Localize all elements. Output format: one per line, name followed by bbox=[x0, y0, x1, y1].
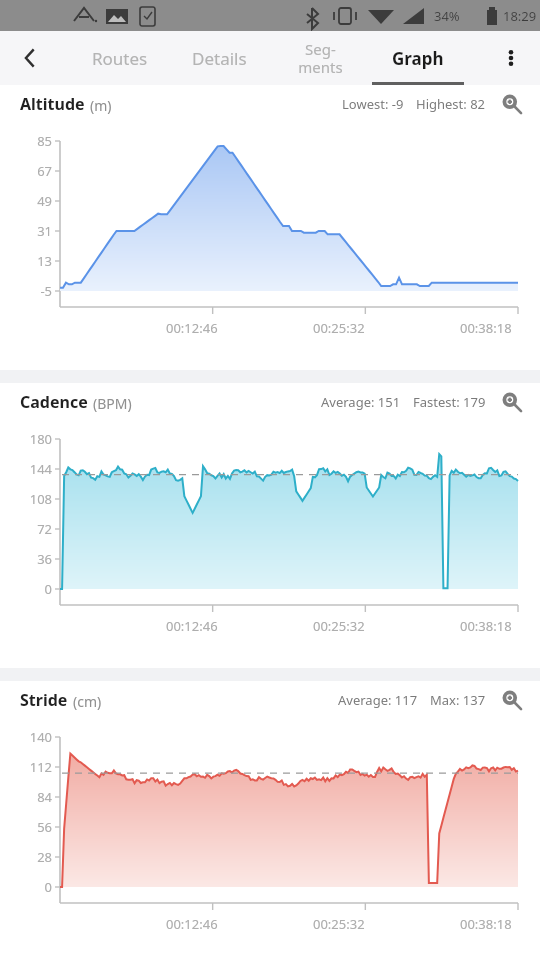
staticText: 13 bbox=[0, 252, 52, 270]
staticText: 180 bbox=[0, 430, 52, 448]
staticText: 67 bbox=[0, 162, 52, 180]
staticText: 00:38:18 bbox=[460, 617, 512, 635]
staticText: 140 bbox=[0, 728, 52, 746]
staticText: Graph bbox=[392, 47, 444, 70]
staticText: Lowest: -9 bbox=[342, 95, 404, 113]
staticText: -5 bbox=[0, 282, 52, 300]
staticText: Cadence bbox=[20, 391, 88, 413]
staticText: 56 bbox=[0, 818, 52, 836]
staticText: 108 bbox=[0, 490, 52, 508]
button[interactable]: Seg- ments bbox=[274, 31, 366, 85]
staticText: 00:38:18 bbox=[460, 319, 512, 337]
staticText: Average: 117 bbox=[338, 691, 418, 709]
staticText: 0 bbox=[0, 580, 52, 598]
staticText: 28 bbox=[0, 848, 52, 866]
button[interactable]: Back bbox=[0, 31, 60, 85]
staticText: 72 bbox=[0, 520, 52, 538]
staticText: (cm) bbox=[73, 692, 102, 711]
staticText: 00:25:32 bbox=[313, 319, 365, 337]
button[interactable]: Zoom in bbox=[496, 88, 528, 120]
staticText: 00:12:46 bbox=[166, 915, 218, 933]
staticText: 112 bbox=[0, 758, 52, 776]
button[interactable]: Zoom in bbox=[496, 386, 528, 418]
button[interactable]: Details bbox=[172, 31, 266, 85]
staticText: Details bbox=[192, 47, 247, 70]
staticText: Altitude bbox=[20, 93, 85, 115]
staticText: 00:38:18 bbox=[460, 915, 512, 933]
staticText: Stride bbox=[20, 689, 68, 711]
staticText: 00:25:32 bbox=[313, 617, 365, 635]
staticText: 36 bbox=[0, 550, 52, 568]
staticText: Average: 151 bbox=[321, 393, 401, 411]
button[interactable]: Graph bbox=[372, 31, 464, 85]
staticText: 84 bbox=[0, 788, 52, 806]
button[interactable]: Zoom in bbox=[496, 684, 528, 716]
staticText: Highest: 82 bbox=[416, 95, 486, 113]
staticText: 49 bbox=[0, 192, 52, 210]
staticText: Seg- ments bbox=[298, 39, 343, 78]
staticText: (m) bbox=[90, 96, 112, 115]
staticText: Routes bbox=[92, 47, 148, 70]
staticText: 18:29 bbox=[503, 7, 537, 25]
staticText: 00:12:46 bbox=[166, 617, 218, 635]
staticText: 34% bbox=[434, 7, 460, 25]
staticText: Fastest: 179 bbox=[413, 393, 486, 411]
button[interactable]: Routes bbox=[74, 31, 166, 85]
staticText: 00:25:32 bbox=[313, 915, 365, 933]
staticText: Max: 137 bbox=[430, 691, 486, 709]
staticText: 85 bbox=[0, 132, 52, 150]
staticText: (BPM) bbox=[93, 394, 132, 413]
staticText: 144 bbox=[0, 460, 52, 478]
button[interactable]: More options bbox=[482, 31, 540, 85]
staticText: 00:12:46 bbox=[166, 319, 218, 337]
staticText: 0 bbox=[0, 878, 52, 896]
staticText: 31 bbox=[0, 222, 52, 240]
